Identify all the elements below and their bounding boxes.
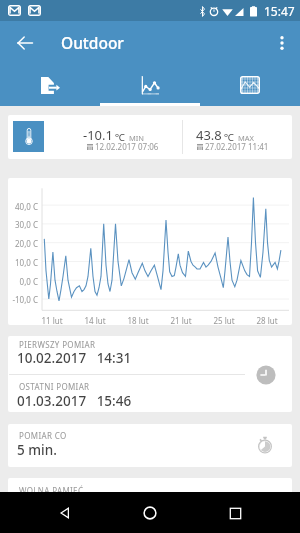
staticText: ℃ (224, 130, 234, 144)
staticText: 15:47 (264, 3, 295, 19)
staticText: 27.02.2017 11:41 (205, 141, 269, 152)
staticText: 18 lut (121, 315, 155, 325)
staticText: 10,0 C (8, 257, 38, 268)
staticText: 11 lut (35, 315, 69, 325)
button[interactable]: Back (45, 493, 85, 533)
staticText: 30,0 C (8, 219, 38, 230)
staticText: WOLNA PAMIĘĆ (19, 485, 84, 496)
staticText: 28 lut (250, 315, 284, 325)
button[interactable]: Back (8, 26, 41, 59)
staticText: 20,0 C (8, 238, 38, 249)
button[interactable]: -10.1 (8, 115, 292, 159)
staticText: 25 lut (207, 315, 241, 325)
button[interactable]: PIERWSZY POMIAR (8, 336, 292, 412)
button[interactable]: More options (266, 27, 298, 59)
staticText: 14 lut (78, 315, 112, 325)
staticText: 12.02.2017 07:06 (95, 141, 159, 152)
staticText: -10,0 C (8, 294, 38, 305)
button[interactable]: Home (130, 493, 170, 533)
staticText: Outdoor (61, 32, 124, 53)
staticText: 40,0 C (8, 201, 38, 212)
staticText: 10.02.2017 14:31 (17, 349, 132, 367)
button[interactable]: POMIAR CO (8, 424, 292, 467)
staticText: OSTATNI POMIAR (19, 381, 90, 392)
staticText: 01.03.2017 15:46 (17, 392, 132, 410)
staticText: ℃ (115, 130, 125, 144)
staticText: 5 min. (17, 441, 57, 459)
button[interactable]: Export data (0, 64, 100, 106)
button[interactable]: Gallery (200, 64, 300, 106)
staticText: 21 lut (164, 315, 198, 325)
staticText: PIERWSZY POMIAR (19, 339, 96, 350)
button[interactable]: WOLNA PAMIĘĆ (8, 478, 292, 508)
button[interactable]: 40,0 C (8, 178, 292, 325)
staticText: 0,0 C (8, 276, 38, 287)
button[interactable]: Chart (100, 64, 200, 106)
staticText: MAX (238, 133, 254, 143)
button[interactable]: Recent apps (215, 493, 255, 533)
staticText: -10.1 (83, 126, 113, 144)
staticText: MIN (129, 133, 145, 143)
staticText: POMIAR CO (19, 430, 67, 441)
staticText: 43.8 (196, 126, 222, 144)
